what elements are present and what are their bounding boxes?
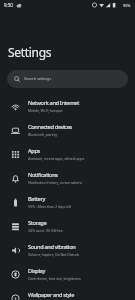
- staticText: Settings: [8, 44, 52, 60]
- staticText: Sound and vibration: [28, 243, 76, 251]
- staticText: 24% used - 96 GB free: [28, 228, 63, 233]
- staticText: Battery: [28, 195, 46, 203]
- staticText: Search settings: [24, 76, 51, 82]
- staticText: Apps: [28, 147, 40, 155]
- staticText: Network and Internet: [28, 99, 79, 107]
- staticText: Wallpaper and style: [28, 291, 74, 299]
- staticText: Storage: [28, 219, 47, 227]
- staticText: Dark theme, font size, brightness: [28, 276, 81, 281]
- button[interactable]: Storage: [0, 214, 135, 238]
- button[interactable]: Connected devices: [0, 118, 135, 142]
- staticText: 9:50: [4, 2, 13, 8]
- button[interactable]: Battery: [0, 190, 135, 214]
- button[interactable]: Sound and vibration: [0, 238, 135, 262]
- button[interactable]: Network and Internet: [0, 94, 135, 118]
- button[interactable]: Apps: [0, 142, 135, 166]
- button[interactable]: Search settings: [7, 70, 128, 88]
- staticText: Assistant, recent apps, default apps: [28, 156, 85, 161]
- staticText: Volume, haptics, Do Not Disturb: [28, 252, 79, 257]
- staticText: 99% - More than 2 days left: [28, 204, 72, 209]
- staticText: 95%: [123, 3, 131, 8]
- button[interactable]: Wallpaper and style: [0, 286, 135, 300]
- button[interactable]: Display: [0, 262, 135, 286]
- staticText: Notifications: [28, 171, 58, 179]
- staticText: Mobile, Wi-Fi, hotspot: [28, 108, 63, 113]
- staticText: Bluetooth, pairing: [28, 132, 57, 137]
- staticText: Notification history, conversations: [28, 180, 82, 185]
- staticText: Display: [28, 267, 45, 275]
- button[interactable]: Notifications: [0, 166, 135, 190]
- staticText: Connected devices: [28, 123, 72, 131]
